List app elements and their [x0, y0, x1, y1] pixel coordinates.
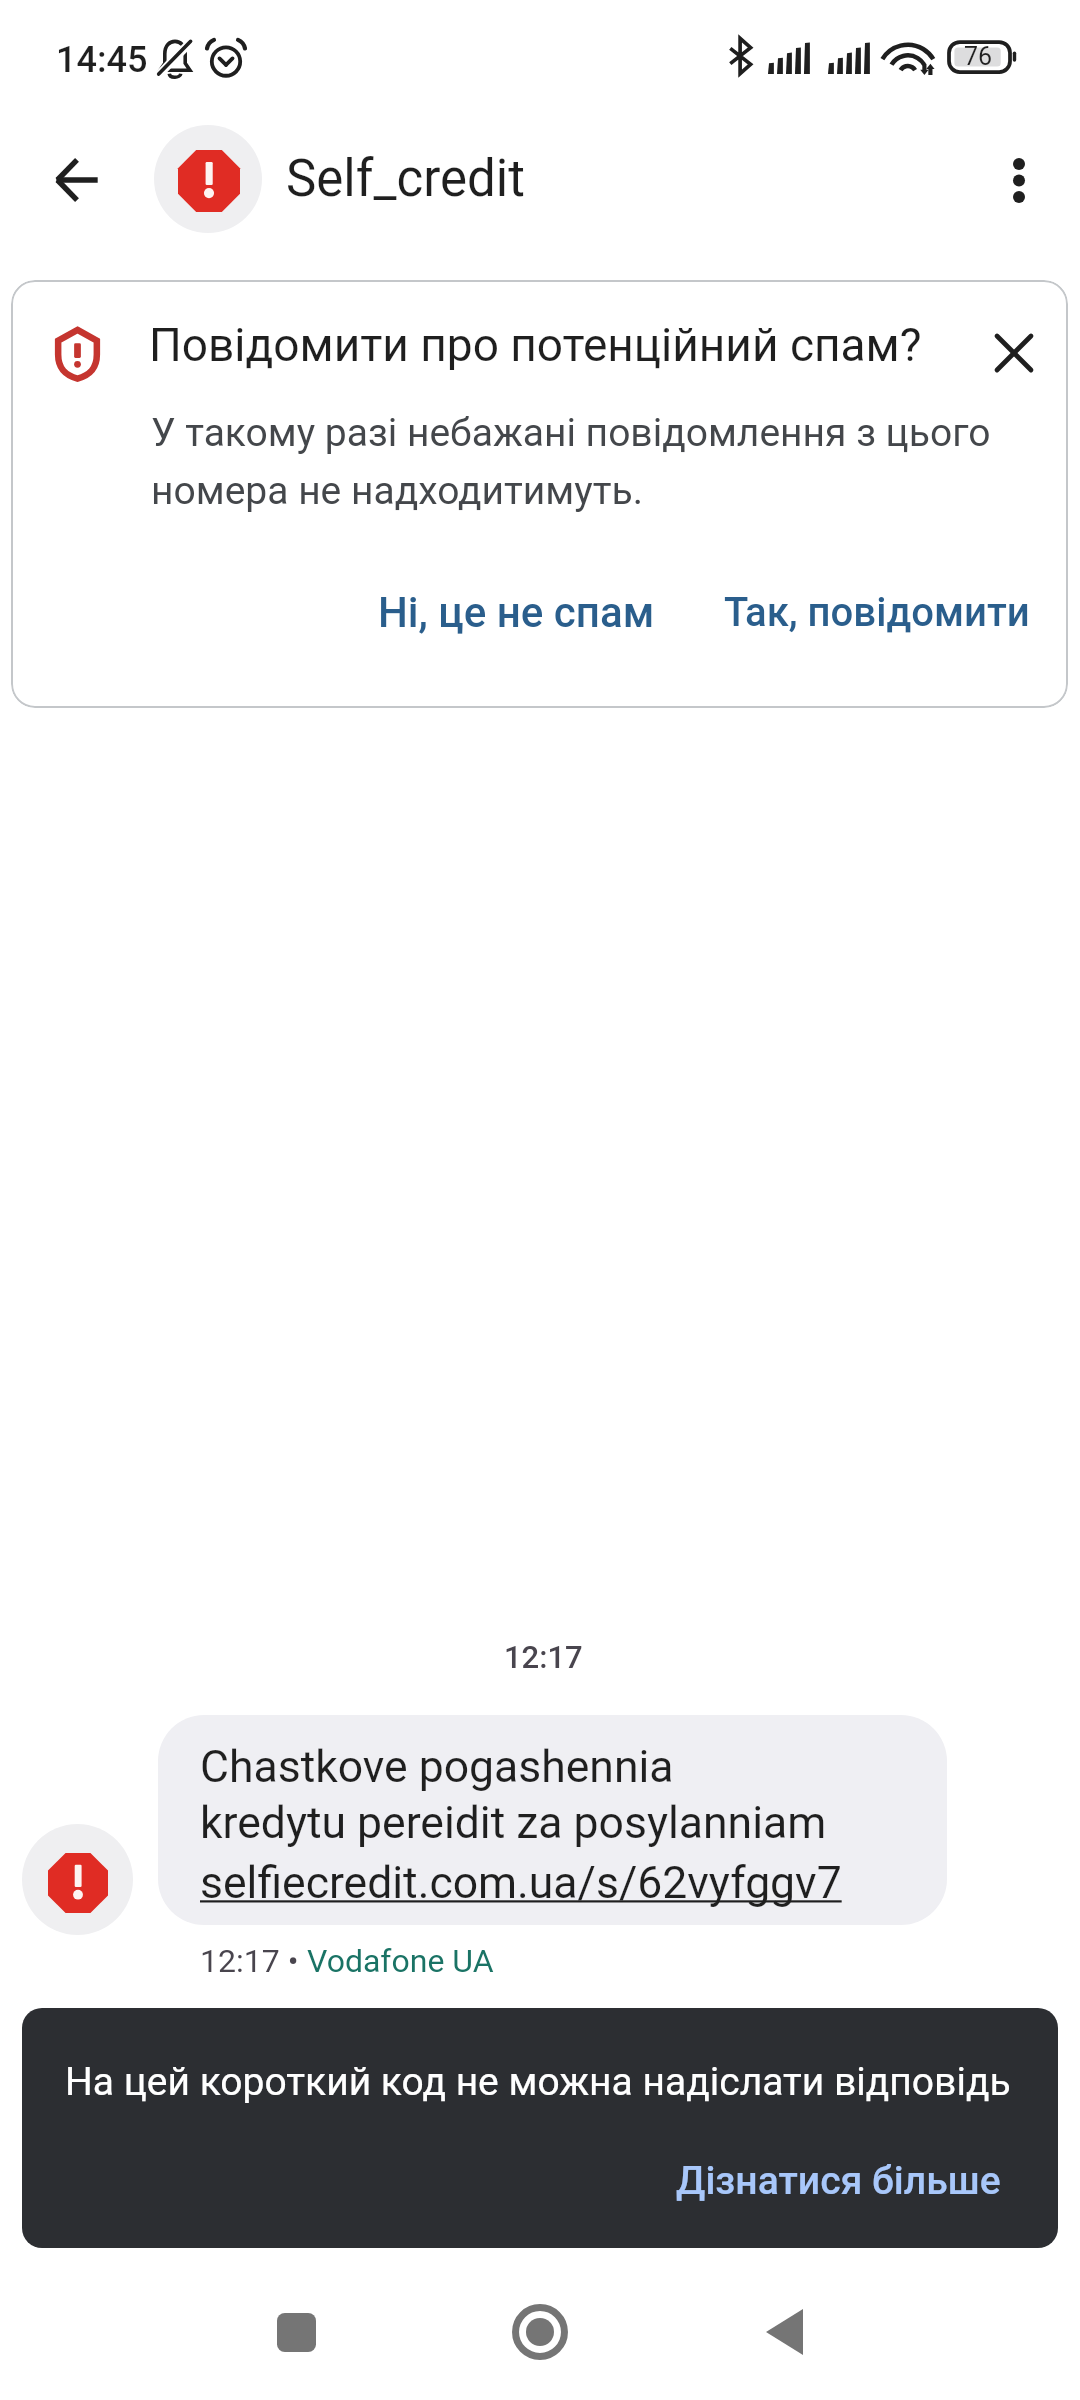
- staticText: 12:17: [504, 1639, 583, 1675]
- button[interactable]: Так, повідомити: [698, 571, 1056, 654]
- button[interactable]: Recent apps: [206, 2262, 386, 2400]
- button[interactable]: Self_credit: [154, 125, 525, 233]
- button[interactable]: Chastkove pogashennia kredytu pereidit z…: [158, 1715, 947, 1925]
- button[interactable]: Ні, це не спам: [352, 570, 681, 655]
- staticText: 12:17 •: [200, 1942, 307, 1980]
- button[interactable]: Home: [450, 2262, 630, 2400]
- staticText: Self_credit: [286, 149, 525, 209]
- staticText: Так, повідомити: [724, 589, 1030, 636]
- staticText: На цей короткий код не можна надіслати в…: [65, 2059, 1011, 2105]
- button[interactable]: Back: [24, 127, 130, 233]
- staticText: Chastkove pogashennia kredytu pereidit z…: [200, 1741, 827, 1849]
- button[interactable]: More options: [966, 127, 1072, 233]
- button[interactable]: Дізнатися більше: [654, 2144, 1023, 2218]
- staticText: 76: [964, 42, 993, 71]
- staticText: Повідомити про потенційний спам?: [149, 318, 922, 372]
- staticText: selfiecredit.com.ua/s/62vyfggv7: [200, 1857, 842, 1909]
- staticText: У такому разі небажані повідомлення з ць…: [151, 410, 991, 513]
- button[interactable]: Back: [694, 2262, 874, 2400]
- staticText: Дізнатися більше: [676, 2158, 1001, 2204]
- staticText: Vodafone UA: [307, 1942, 494, 1980]
- staticText: Ні, це не спам: [378, 588, 655, 637]
- staticText: 14:45: [56, 39, 148, 81]
- button[interactable]: Close: [954, 293, 1068, 413]
